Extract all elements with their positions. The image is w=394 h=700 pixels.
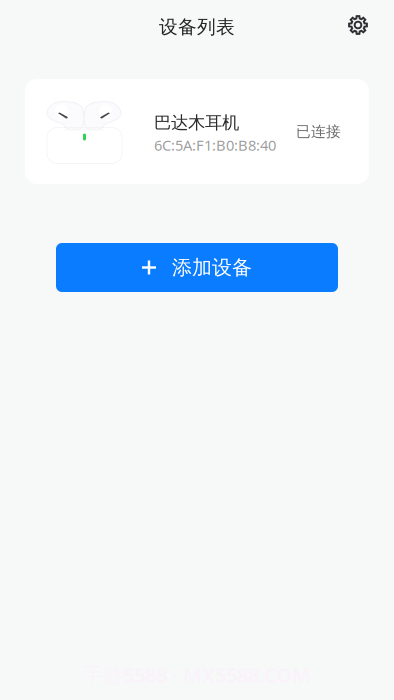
staticText: 添加设备: [172, 255, 252, 280]
staticText: 6C:5A:F1:B0:B8:40: [154, 135, 276, 155]
staticText: 巴达木耳机: [154, 112, 239, 133]
staticText: 设备列表: [159, 15, 235, 38]
button[interactable]: 添加设备: [56, 243, 338, 292]
button[interactable]: 巴达木耳机: [25, 79, 369, 184]
button[interactable]: Settings: [336, 3, 380, 47]
staticText: 已连接: [296, 122, 341, 140]
